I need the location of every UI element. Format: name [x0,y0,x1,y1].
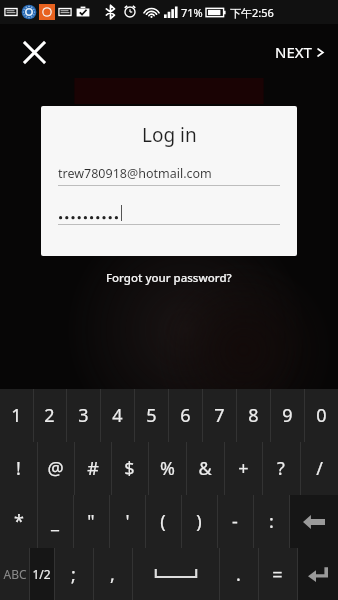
button[interactable]: ! [0,442,37,495]
staticText: 8 [248,403,259,428]
button[interactable]: 2 [33,389,66,442]
button[interactable]: _ [37,495,73,548]
staticText: 4 [112,403,123,428]
button[interactable]: - [217,495,253,548]
staticText: ! [16,456,21,481]
button[interactable]: * [0,495,37,548]
staticText: 7 [214,403,225,428]
staticText: trew780918@hotmail.com [58,165,212,182]
staticText: Forgot your password? [106,270,232,286]
button[interactable]: . [219,548,258,600]
staticText: 9 [282,403,293,428]
staticText: % [160,456,175,481]
button[interactable]: = [258,548,297,600]
button[interactable]: 3 [66,389,100,442]
staticText: - [232,509,238,534]
staticText: # [87,456,99,481]
button[interactable]: , [93,548,132,600]
button[interactable]: $ [111,442,148,495]
button[interactable]: Enter [297,548,338,600]
button[interactable]: 9 [270,389,304,442]
button[interactable]: NEXT [261,34,338,70]
button[interactable]: 8 [236,389,270,442]
button[interactable]: ? [262,442,300,495]
staticText: & [198,456,212,481]
staticText: 1/2 [32,566,51,582]
staticText: 1 [11,403,22,428]
button[interactable]: 4 [100,389,134,442]
button[interactable]: Backspace [289,495,338,548]
button[interactable]: ) [181,495,217,548]
staticText: ? [277,456,285,481]
staticText: 2 [44,403,55,428]
staticText: . [236,562,241,587]
staticText: / [316,456,323,481]
staticText: ( [160,509,166,534]
staticText: 5 [146,403,157,428]
button[interactable]: 5 [134,389,168,442]
staticText: 71% [181,5,203,20]
staticText: Log in [142,122,197,148]
staticText: @ [47,456,64,481]
button[interactable]: % [148,442,186,495]
button[interactable]: ; [54,548,93,600]
staticText: , [110,562,115,587]
staticText: 3 [78,403,89,428]
staticText: 0 [316,403,327,428]
button[interactable]: Space [132,548,219,600]
staticText: : [269,509,274,534]
button[interactable]: Forgot your password? [98,266,240,290]
staticText: $ [124,456,135,481]
button[interactable]: + [224,442,262,495]
staticText: NEXT [275,42,312,62]
staticText: ABC [3,566,27,582]
button[interactable]: " [73,495,109,548]
button[interactable]: / [300,442,338,495]
button[interactable]: Log in [41,106,297,256]
button[interactable]: : [253,495,289,548]
button[interactable]: 0 [304,389,338,442]
button[interactable]: 1 [0,389,33,442]
button[interactable]: @ [37,442,74,495]
staticText: _ [51,509,59,534]
staticText: 6 [180,403,191,428]
staticText: " [87,509,95,534]
button[interactable]: 7 [202,389,236,442]
staticText: ; [71,562,76,587]
button[interactable]: Close [14,32,54,72]
button[interactable]: & [186,442,224,495]
button[interactable]: ( [145,495,181,548]
button[interactable]: ' [109,495,145,548]
staticText: * [14,509,24,534]
staticText: + [238,456,249,481]
button[interactable]: 1/2 [29,548,54,600]
staticText: ' [125,509,130,534]
button[interactable]: # [74,442,111,495]
staticText: 下午2:56 [230,5,274,20]
staticText: ) [196,509,202,534]
button[interactable]: ABC [0,548,29,600]
button[interactable]: 6 [168,389,202,442]
staticText: = [272,562,283,587]
